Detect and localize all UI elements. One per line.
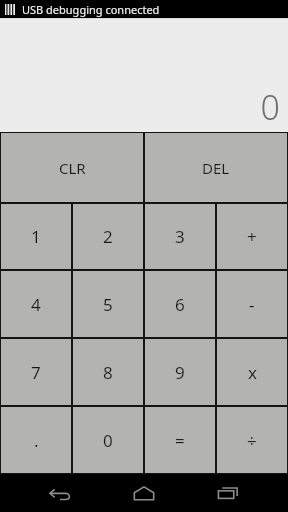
staticText: 3	[175, 225, 185, 248]
staticText: 4	[31, 293, 41, 316]
button[interactable]: x	[217, 339, 287, 405]
button[interactable]: CLR	[1, 133, 143, 202]
button[interactable]: Recent apps	[204, 474, 252, 512]
button[interactable]: ÷	[217, 407, 287, 473]
button[interactable]: .	[1, 407, 71, 473]
staticText: 0	[103, 429, 113, 452]
staticText: 9	[175, 361, 185, 384]
button[interactable]: 6	[145, 271, 215, 337]
staticText: 6	[175, 293, 185, 316]
button[interactable]: 0	[73, 407, 143, 473]
staticText: -	[249, 293, 255, 316]
staticText: CLR	[59, 158, 86, 178]
button[interactable]: 1	[1, 204, 71, 269]
button[interactable]: Home	[120, 474, 168, 512]
button[interactable]: 3	[145, 204, 215, 269]
button[interactable]: =	[145, 407, 215, 473]
staticText: 7	[31, 361, 41, 384]
staticText: ÷	[247, 429, 257, 452]
button[interactable]: 9	[145, 339, 215, 405]
button[interactable]: 8	[73, 339, 143, 405]
button[interactable]: 7	[1, 339, 71, 405]
button[interactable]: +	[217, 204, 287, 269]
staticText: +	[247, 225, 257, 248]
button[interactable]: DEL	[145, 133, 287, 202]
staticText: =	[175, 429, 185, 452]
button[interactable]: 5	[73, 271, 143, 337]
staticText: 0	[260, 84, 280, 130]
staticText: USB debugging connected	[22, 2, 160, 17]
button[interactable]: 2	[73, 204, 143, 269]
staticText: 8	[103, 361, 113, 384]
button[interactable]: -	[217, 271, 287, 337]
staticText: 5	[103, 293, 113, 316]
button[interactable]: 4	[1, 271, 71, 337]
staticText: 1	[31, 225, 41, 248]
button[interactable]: Back	[36, 474, 84, 512]
staticText: x	[248, 361, 257, 384]
staticText: .	[34, 429, 39, 452]
staticText: 2	[103, 225, 113, 248]
staticText: DEL	[202, 158, 230, 178]
